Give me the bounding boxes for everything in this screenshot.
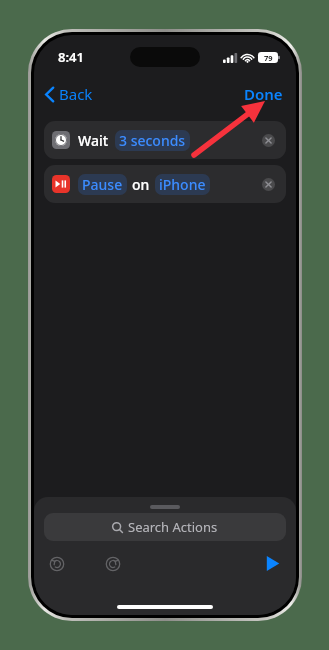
staticText: Wait: [78, 131, 109, 150]
staticText: on: [132, 175, 150, 194]
staticText: iPhone: [159, 175, 206, 194]
button[interactable]: Done: [239, 80, 288, 108]
staticText: Done: [244, 84, 283, 104]
button[interactable]: 3 seconds: [115, 130, 190, 151]
button[interactable]: iPhone: [155, 174, 210, 195]
staticText: Pause: [82, 175, 123, 194]
staticText: Back: [59, 84, 93, 104]
button[interactable]: Remove action: [258, 174, 278, 194]
button[interactable]: Wait: [44, 121, 286, 159]
staticText: 3 seconds: [119, 131, 186, 150]
staticText: 8:41: [58, 48, 84, 66]
button[interactable]: Search Actions: [44, 513, 286, 541]
button[interactable]: Pause: [44, 165, 286, 203]
button[interactable]: Undo: [46, 553, 68, 575]
button[interactable]: Pause: [78, 174, 127, 195]
button[interactable]: Remove action: [258, 130, 278, 150]
button[interactable]: Run shortcut: [260, 551, 284, 575]
staticText: Search Actions: [128, 518, 218, 536]
button[interactable]: Back: [41, 80, 97, 108]
button[interactable]: Redo: [102, 553, 124, 575]
staticText: 79: [264, 53, 273, 63]
